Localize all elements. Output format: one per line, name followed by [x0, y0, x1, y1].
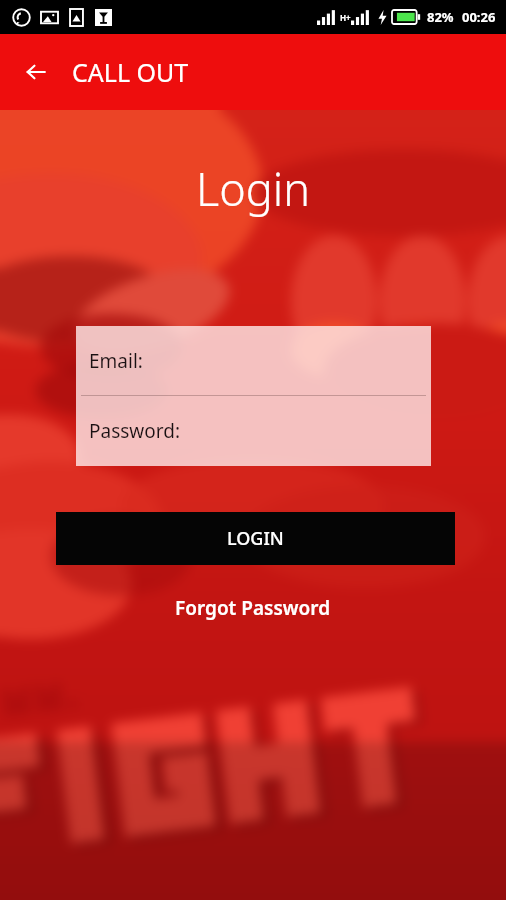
- staticText: Forgot Password: [175, 595, 331, 621]
- staticText: Email:: [89, 348, 143, 374]
- button[interactable]: Password:: [76, 396, 431, 466]
- staticText: CALL OUT: [72, 55, 189, 89]
- staticText: Password:: [89, 418, 181, 444]
- staticText: LOGIN: [227, 526, 284, 551]
- staticText: H+: [340, 12, 351, 23]
- button[interactable]: Forgot Password: [161, 588, 345, 628]
- staticText: 00:26: [462, 8, 496, 26]
- button[interactable]: Back: [10, 46, 62, 98]
- staticText: 82%: [427, 8, 454, 26]
- button[interactable]: LOGIN: [56, 512, 455, 565]
- staticText: Login: [0, 158, 506, 219]
- button[interactable]: Email:: [76, 326, 431, 395]
